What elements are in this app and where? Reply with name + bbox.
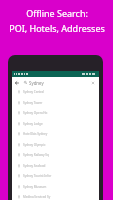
button[interactable]: Medina Serviced Sy [12, 192, 99, 200]
staticText: Hotel Ibis Sydney [23, 132, 48, 136]
staticText: Sydney Lodge [23, 122, 43, 126]
button[interactable]: Sydney Central [12, 87, 99, 97]
staticText: Sydney Railway Sq [23, 153, 49, 157]
button[interactable]: Sydney Lodge [12, 119, 99, 129]
staticText: Sydney Olympic [23, 143, 46, 147]
other: Clear search [91, 81, 95, 85]
button[interactable]: Sydney Tower [12, 98, 99, 108]
other: Back [15, 81, 19, 85]
button[interactable]: Hotel Ibis Sydney [12, 129, 99, 139]
button[interactable]: Sydney Railway Sq [12, 150, 99, 160]
staticText: Offline Search: [26, 7, 88, 19]
button[interactable]: Sydney Seafood [12, 161, 99, 171]
button[interactable]: Sydney Museum [12, 182, 99, 192]
button[interactable]: Back [12, 77, 99, 88]
other: Search [24, 81, 27, 84]
button[interactable]: Sydney Tourist Infor [12, 171, 99, 181]
staticText: Medina Serviced Sy [23, 195, 51, 199]
staticText: Sydney Seafood [23, 164, 46, 168]
staticText: Sydney Central [23, 90, 44, 94]
staticText: Sydney [29, 80, 44, 86]
staticText: POI, Hotels, Addresses [9, 22, 105, 34]
button[interactable]: Sydney Olympic [12, 140, 99, 150]
staticText: Sydney Tower [23, 101, 43, 105]
button[interactable]: Sydney Opera Ho [12, 108, 99, 118]
staticText: Sydney Museum [23, 185, 47, 189]
staticText: Sydney Opera Ho [23, 111, 48, 115]
staticText: Sydney Tourist Infor [23, 174, 52, 178]
